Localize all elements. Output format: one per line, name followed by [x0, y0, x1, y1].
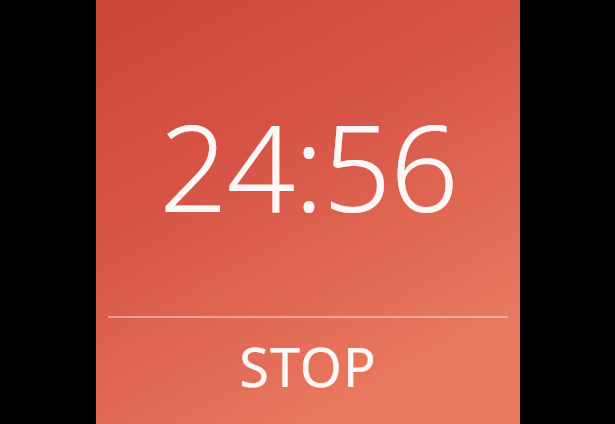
- staticText: 24:56: [159, 84, 458, 247]
- staticText: STOP: [239, 329, 377, 403]
- button[interactable]: Stop timer: [96, 318, 520, 424]
- button[interactable]: 24:56: [96, 84, 520, 247]
